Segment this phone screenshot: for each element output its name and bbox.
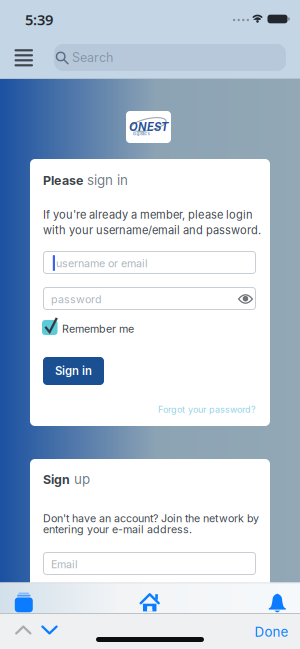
staticText: Sign in [55, 364, 92, 378]
staticText: Search [72, 50, 113, 65]
button[interactable]: Search [54, 44, 286, 71]
staticText: Email [51, 558, 78, 571]
button[interactable]: Menu [8, 43, 39, 72]
staticText: Remember me [62, 322, 134, 335]
button[interactable]: Forgot your password? [158, 404, 256, 415]
staticText: sign in [87, 172, 128, 188]
staticText: Sign [43, 472, 70, 487]
button[interactable]: Remember me [42, 317, 137, 335]
button[interactable]: Previous field [10, 620, 37, 640]
staticText: If you're already a member, please login [43, 208, 253, 221]
staticText: up [74, 471, 90, 487]
button[interactable]: password [43, 287, 256, 310]
button[interactable]: Sign in [43, 357, 104, 385]
button[interactable]: Next field [36, 620, 63, 640]
staticText: Don't have an account? Join the network … [43, 512, 259, 525]
button[interactable]: username or email [43, 251, 256, 274]
button[interactable]: Notifications [263, 588, 291, 618]
button[interactable]: Done [254, 624, 288, 640]
button[interactable]: Stacks [10, 587, 38, 617]
staticText: username or email [56, 257, 148, 270]
button[interactable]: Home [135, 588, 164, 616]
staticText: 5:39 [25, 10, 53, 29]
staticText: Done [254, 624, 288, 640]
staticText: logistics [132, 131, 149, 136]
staticText: password [51, 293, 102, 306]
staticText: ONEST [129, 120, 168, 134]
staticText: Forgot your password? [158, 404, 256, 415]
staticText: Please [43, 173, 83, 188]
button[interactable]: Email [43, 552, 256, 575]
staticText: entering your e-mail address. [43, 523, 192, 536]
staticText: with your username/email and password. [43, 224, 261, 237]
button[interactable]: Show password [235, 291, 256, 307]
